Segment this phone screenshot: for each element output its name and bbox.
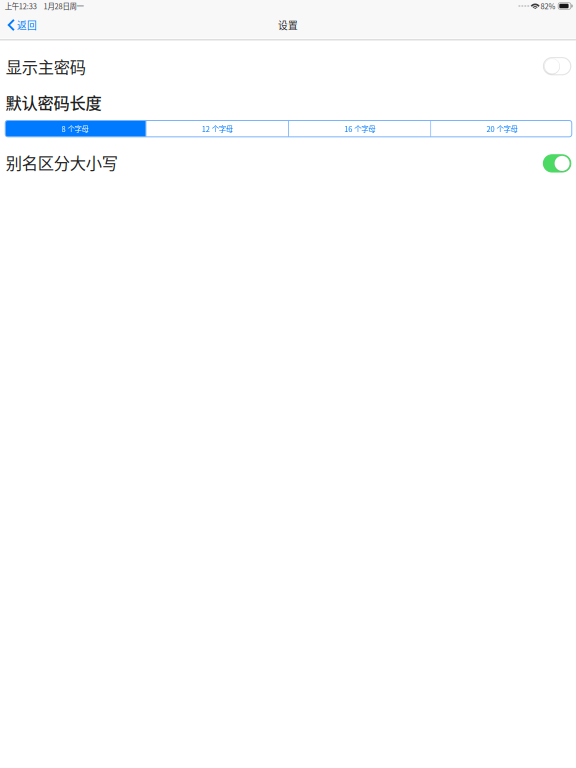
staticText: 8 个字母 (62, 123, 89, 134)
button[interactable]: 别名区分大小写 (543, 154, 571, 171)
staticText: 20 个字母 (486, 123, 517, 134)
button[interactable]: 16 个字母 (289, 120, 430, 137)
staticText: 82% (540, 1, 555, 11)
staticText: 显示主密码 (6, 54, 86, 78)
staticText: 别名区分大小写 (6, 150, 118, 174)
staticText: 默认密码长度 (6, 90, 102, 114)
staticText: 1月28日周一 (43, 1, 83, 11)
button[interactable]: 12 个字母 (147, 120, 288, 137)
staticText: 12 个字母 (202, 123, 233, 134)
button[interactable]: 20 个字母 (431, 120, 573, 137)
button[interactable]: 显示主密码 (543, 58, 571, 75)
staticText: 16 个字母 (344, 123, 375, 134)
button[interactable]: 8 个字母 (4, 120, 146, 137)
button[interactable]: 返回 (0, 13, 45, 37)
staticText: 设置 (278, 18, 298, 32)
staticText: 返回 (17, 18, 37, 32)
staticText: 上午12:33 (5, 1, 37, 11)
